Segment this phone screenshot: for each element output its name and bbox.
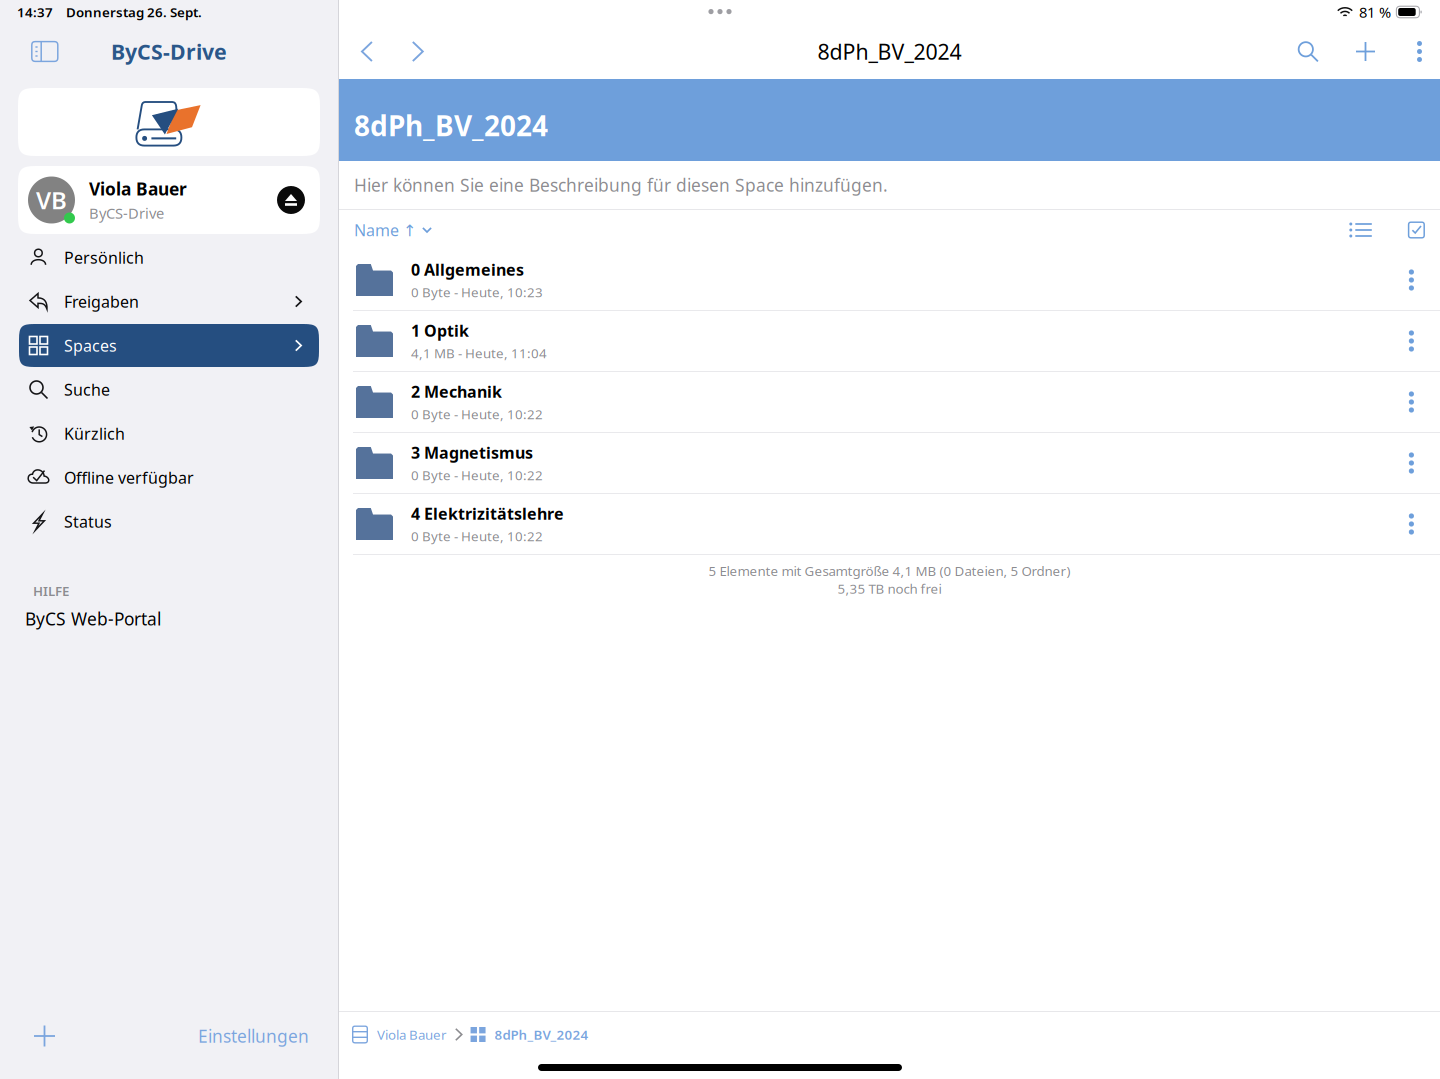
button[interactable]: Suche [19,368,319,411]
button[interactable]: Kürzlich [19,412,319,455]
staticText: ByCS Web-Portal [25,607,161,630]
staticText: 8dPh_BV_2024 [817,37,961,66]
staticText: Donnerstag 26. Sept. [66,3,202,21]
button[interactable]: Elemente auswählen [1401,214,1432,246]
staticText: ByCS-Drive [89,203,164,223]
staticText: 14:37 [17,3,53,21]
button[interactable]: Weitere Optionen [1407,31,1432,72]
staticText: 2 Mechanik [411,381,502,402]
button[interactable]: Hinzufügen [26,1017,63,1054]
staticText: 1 Optik [411,320,469,341]
staticText: 0 Byte - Heute, 10:23 [411,283,543,301]
staticText: Viola Bauer [377,1026,447,1043]
button[interactable]: Name ↑ [354,219,432,241]
staticText: 0 Allgemeines [411,259,524,280]
staticText: 0 Byte - Heute, 10:22 [411,527,543,545]
button[interactable]: 8dPh_BV_2024 [471,1026,589,1043]
staticText: 8dPh_BV_2024 [354,107,548,144]
button[interactable]: 0 Allgemeines [339,250,1440,311]
button[interactable]: 2 Mechanik [339,372,1440,433]
button[interactable]: ByCS Web-Portal [0,601,338,637]
button[interactable]: Seitenleiste ein- oder ausblenden [24,34,66,69]
staticText: Kürzlich [64,423,125,444]
button[interactable]: Persönlich [19,236,319,279]
button[interactable]: 4 Elektrizitätslehre [339,494,1440,555]
staticText: Offline verfügbar [64,467,194,488]
staticText: Hier können Sie eine Beschreibung für di… [354,173,888,196]
staticText: 5 Elemente mit Gesamtgröße 4,1 MB (0 Dat… [708,562,1070,580]
button[interactable]: 3 Magnetismus [339,433,1440,494]
button[interactable]: Viola Bauer [352,1025,447,1043]
button[interactable]: Zurück [351,31,383,72]
staticText: HILFE [33,582,69,600]
staticText: 8dPh_BV_2024 [495,1026,589,1043]
staticText: 4 Elektrizitätslehre [411,503,564,524]
staticText: ByCS-Drive [111,37,227,66]
button[interactable]: 1 Optik [339,311,1440,372]
button[interactable]: Neu erstellen [1346,32,1385,71]
staticText: Viola Bauer [89,177,187,200]
button[interactable]: Einstellungen [190,1016,317,1055]
staticText: Spaces [64,335,117,356]
staticText: 81 % [1359,2,1391,22]
staticText: 0 Byte - Heute, 10:22 [411,466,543,484]
staticText: 4,1 MB - Heute, 11:04 [411,344,547,362]
staticText: Name ↑ [354,219,416,241]
button[interactable]: Spaces [19,324,319,367]
button[interactable]: Freigaben [19,280,319,323]
staticText: 3 Magnetismus [411,442,533,463]
staticText: Status [64,511,112,532]
button[interactable]: VB [18,166,320,234]
staticText: Persönlich [64,247,144,268]
staticText: Suche [64,379,110,400]
staticText: Einstellungen [198,1024,309,1047]
button[interactable]: Offline verfügbar [19,456,319,499]
staticText: VB [36,184,67,216]
button[interactable]: Ansicht wechseln [1342,215,1379,244]
button[interactable]: Vorwärts [402,31,434,72]
button[interactable]: Suchen [1287,30,1329,72]
staticText: Freigaben [64,291,139,312]
button[interactable]: Status [19,500,319,543]
staticText: 0 Byte - Heute, 10:22 [411,405,543,423]
staticText: 5,35 TB noch frei [837,580,941,597]
